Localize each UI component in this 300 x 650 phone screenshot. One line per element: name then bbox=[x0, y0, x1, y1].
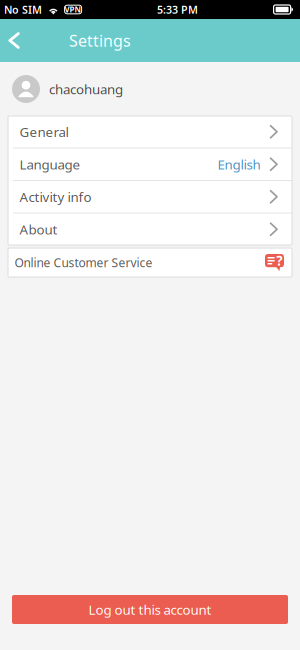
button[interactable]: Language bbox=[8, 148, 292, 180]
button[interactable]: chacohuang bbox=[0, 62, 300, 116]
staticText: chacohuang bbox=[49, 80, 123, 98]
staticText: General bbox=[19, 123, 68, 141]
button[interactable]: About bbox=[8, 213, 292, 245]
staticText: No SIM bbox=[4, 2, 42, 17]
button[interactable]: Online Customer Service bbox=[8, 248, 292, 277]
staticText: 5:33 PM bbox=[157, 2, 198, 17]
staticText: Settings bbox=[69, 30, 131, 51]
staticText: Log out this account bbox=[88, 601, 211, 618]
staticText: Language bbox=[19, 155, 80, 173]
button[interactable]: Back bbox=[0, 19, 32, 62]
staticText: Activity info bbox=[19, 188, 91, 206]
staticText: Online Customer Service bbox=[14, 254, 152, 270]
staticText: ? bbox=[276, 252, 282, 269]
button[interactable]: Activity info bbox=[8, 181, 292, 212]
staticText: About bbox=[19, 220, 57, 238]
button[interactable]: Log out this account bbox=[12, 595, 288, 624]
staticText: VPN bbox=[65, 4, 82, 15]
staticText: English bbox=[218, 155, 261, 173]
button[interactable]: General bbox=[8, 116, 292, 147]
